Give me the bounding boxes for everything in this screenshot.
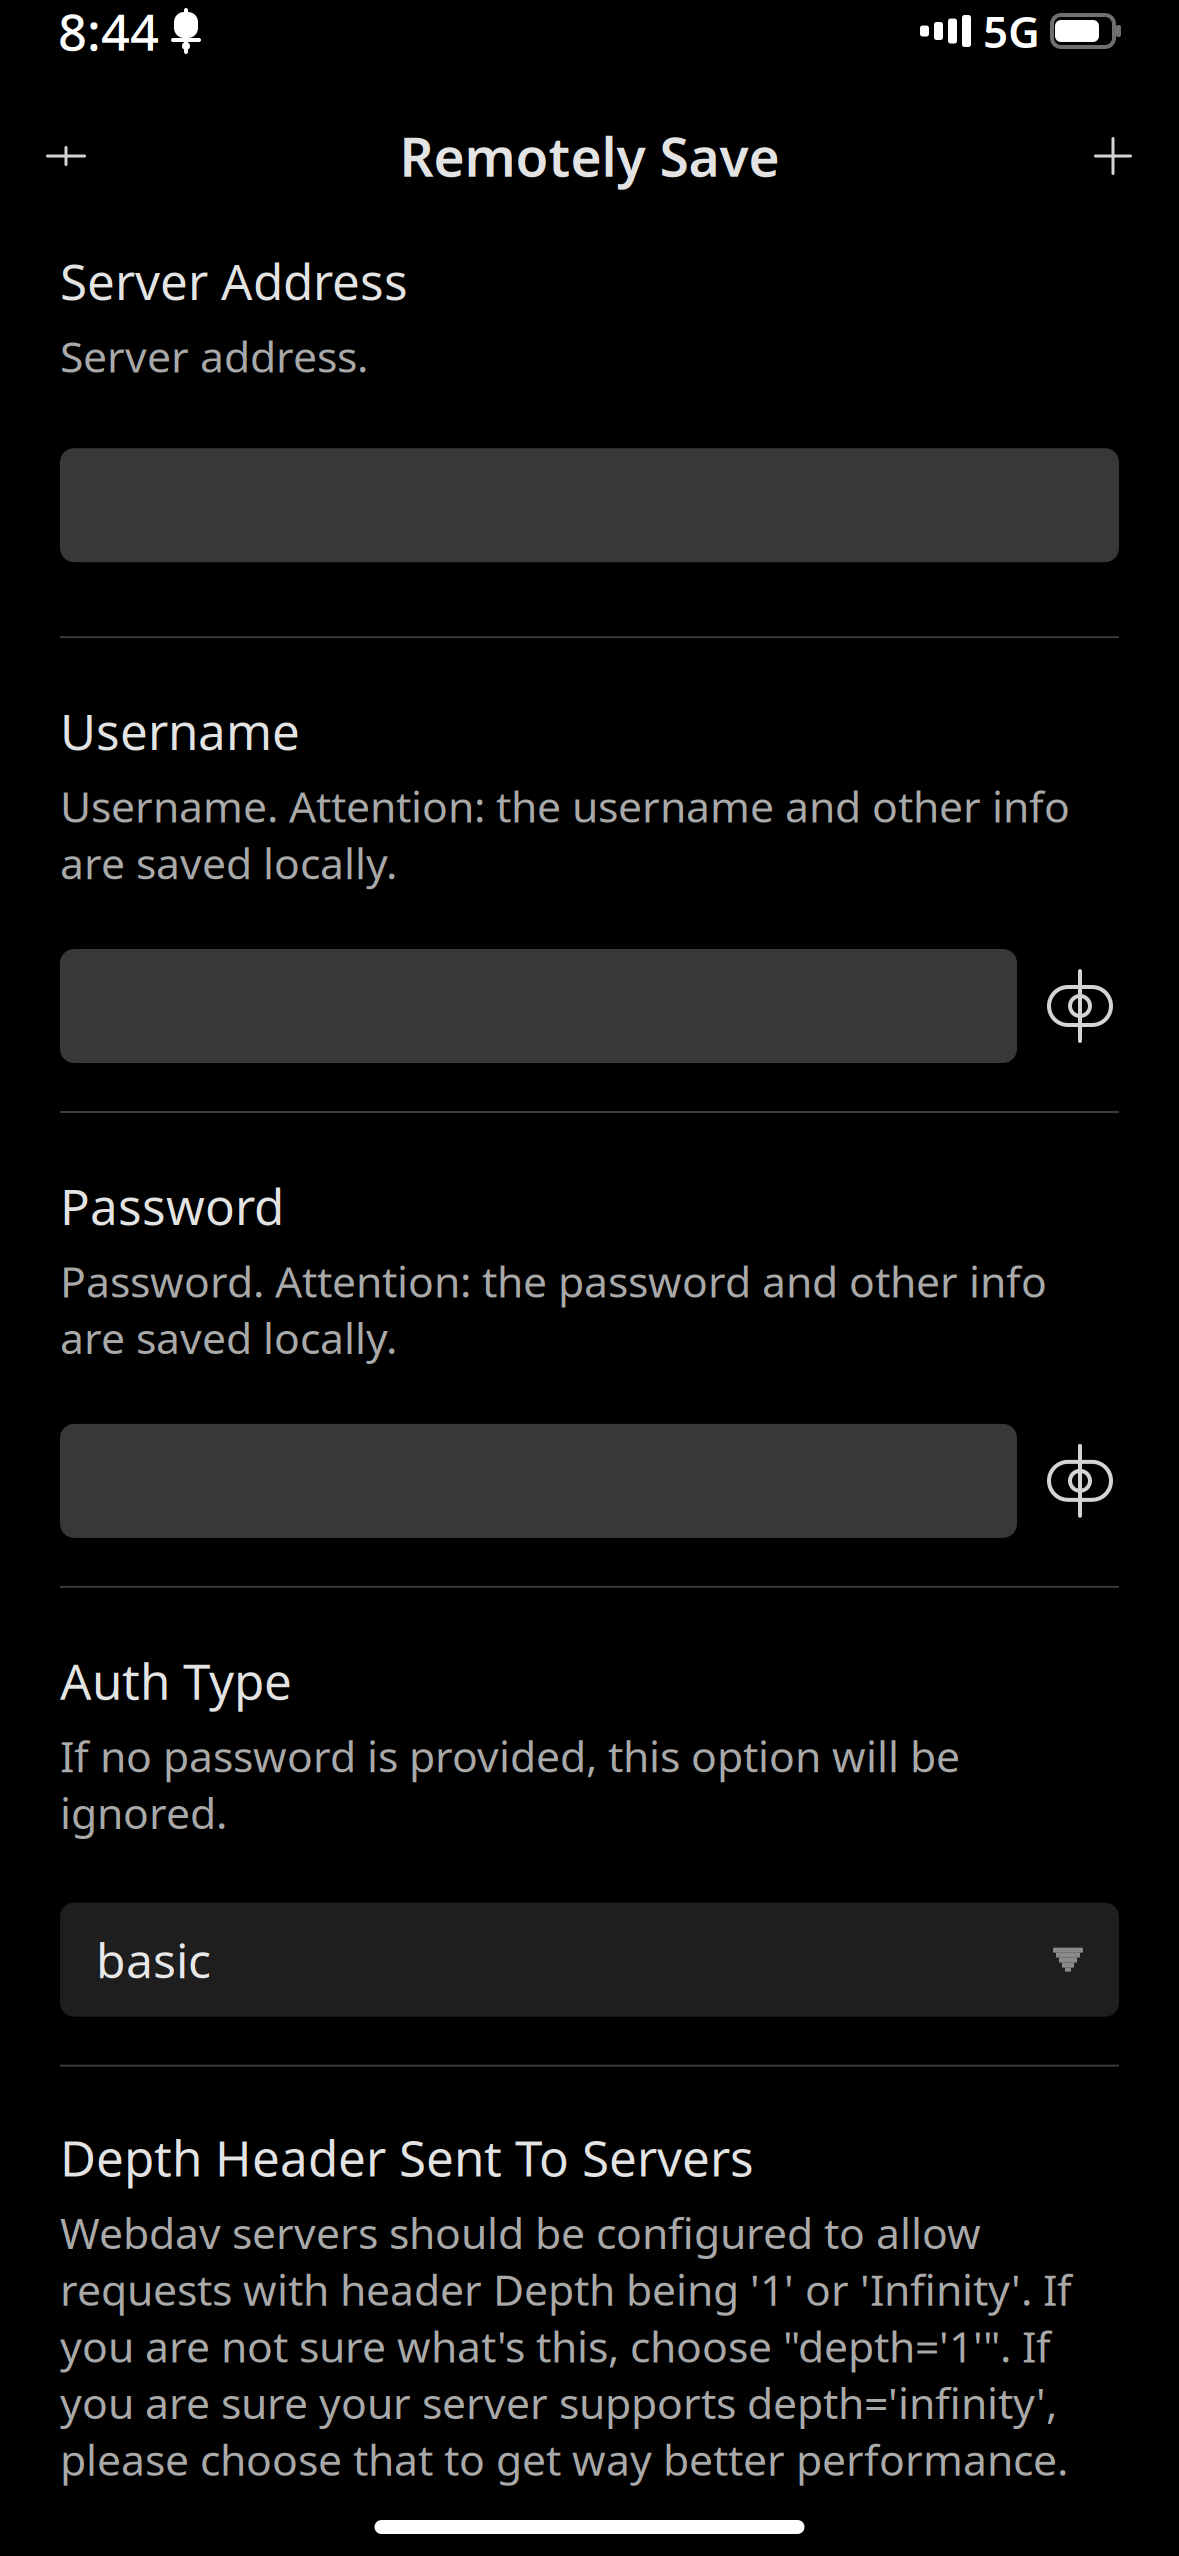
staticText: 5G xyxy=(983,2,1040,60)
staticText: Depth Header Sent To Servers xyxy=(60,2125,754,2190)
staticText: 8:44 xyxy=(58,0,159,65)
staticText: Username. Attention: the username and ot… xyxy=(60,778,1070,891)
staticText: Auth Type xyxy=(60,1648,292,1713)
button[interactable]: Back xyxy=(24,114,108,198)
staticText: Server address. xyxy=(60,327,368,384)
staticText: Username xyxy=(60,698,300,764)
staticText: Server Address xyxy=(60,248,408,313)
button[interactable]: Close xyxy=(1071,114,1155,198)
staticText: If no password is provided, this option … xyxy=(60,1727,960,1841)
staticText: basic xyxy=(96,1928,211,1991)
button[interactable]: basic xyxy=(60,1903,1119,2017)
staticText: Remotely Save xyxy=(399,121,779,191)
button[interactable]: Show text xyxy=(1041,949,1119,1063)
staticText: Password xyxy=(60,1173,284,1238)
button[interactable]: Show text xyxy=(1041,1424,1119,1538)
staticText: Webdav servers should be configured to a… xyxy=(60,2204,1072,2487)
staticText: Password. Attention: the password and ot… xyxy=(60,1252,1047,1366)
